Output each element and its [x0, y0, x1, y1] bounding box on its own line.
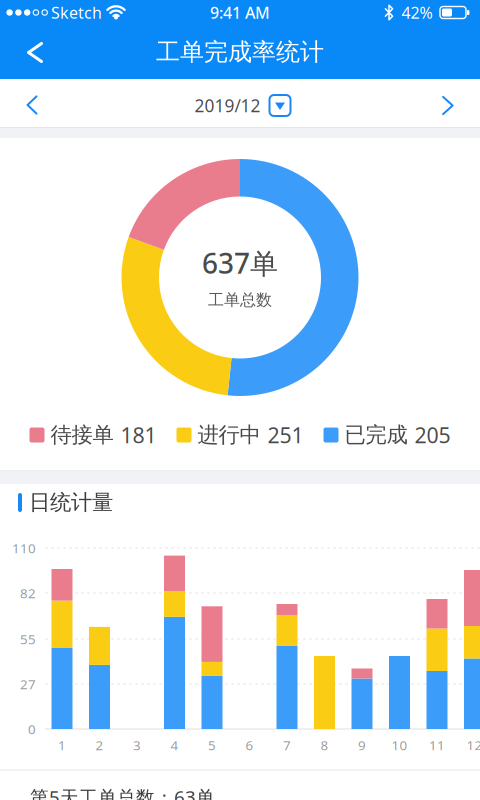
staticText: 7 — [283, 736, 291, 754]
staticText: 进行中 — [197, 422, 260, 448]
staticText: 55 — [20, 630, 36, 648]
button[interactable]: Next month — [420, 79, 480, 127]
staticText: 205 — [414, 421, 450, 449]
staticText: 27 — [20, 675, 36, 693]
staticText: 待接单 — [50, 422, 113, 448]
staticText: 2019/12 — [194, 94, 260, 117]
staticText: 11 — [429, 736, 445, 754]
button[interactable]: 2019/12 — [194, 94, 290, 117]
staticText: Sketch — [51, 2, 102, 23]
staticText: 1 — [58, 736, 66, 754]
staticText: 82 — [20, 584, 36, 602]
staticText: 工单总数 — [208, 290, 272, 310]
staticText: 251 — [267, 421, 303, 449]
staticText: 0 — [28, 720, 36, 738]
staticText: 3 — [133, 736, 141, 754]
button[interactable]: Back — [0, 25, 56, 79]
staticText: 6 — [245, 736, 253, 754]
staticText: 工单完成率统计 — [156, 37, 324, 67]
staticText: 2 — [95, 736, 103, 754]
staticText: 110 — [12, 539, 36, 557]
staticText: 12 — [466, 736, 480, 754]
staticText: 42% — [401, 2, 432, 23]
staticText: 10 — [391, 736, 407, 754]
staticText: 已完成 — [344, 422, 407, 448]
staticText: 8 — [320, 736, 328, 754]
staticText: 181 — [120, 421, 156, 449]
staticText: 4 — [170, 736, 178, 754]
staticText: 9:41 AM — [210, 2, 270, 23]
staticText: 第5天工单总数：63单 — [30, 785, 215, 800]
staticText: 5 — [208, 736, 216, 754]
staticText: 637单 — [202, 244, 278, 282]
button[interactable]: Previous month — [0, 79, 60, 127]
staticText: 日统计量 — [29, 489, 113, 516]
staticText: 9 — [358, 736, 366, 754]
